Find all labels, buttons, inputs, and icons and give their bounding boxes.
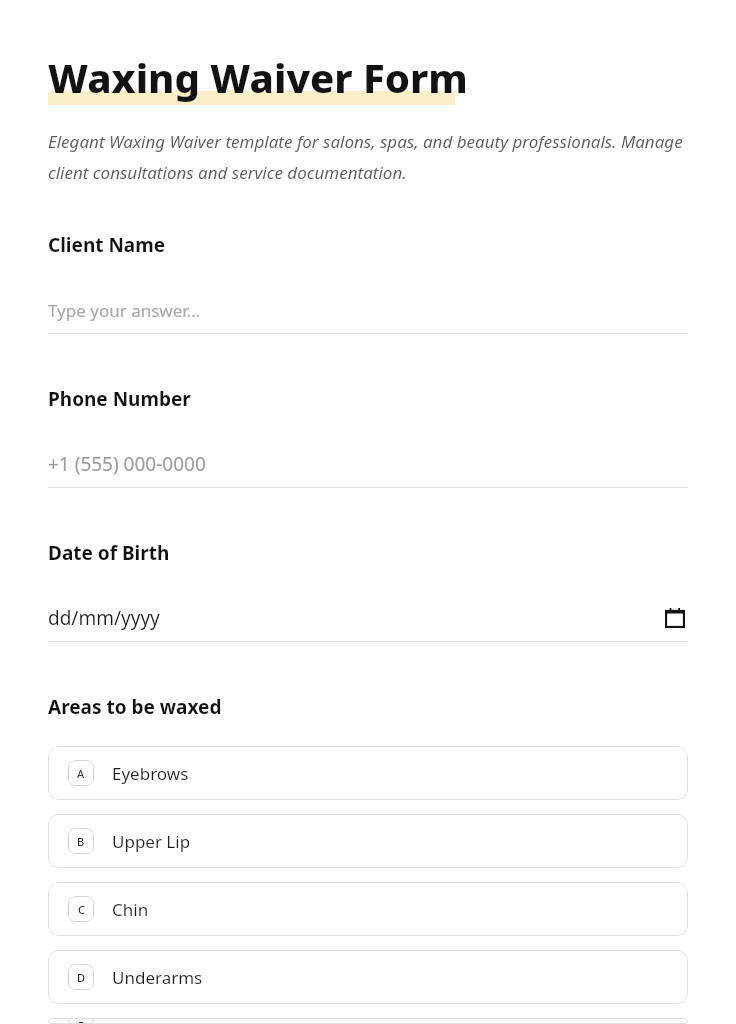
staticText: B <box>77 834 85 849</box>
staticText: D <box>77 970 86 985</box>
button[interactable]: E <box>48 1018 688 1024</box>
button[interactable]: +1 (555) 000-0000 <box>48 441 688 488</box>
staticText: Areas to be waxed <box>48 694 222 720</box>
staticText: Date of Birth <box>48 540 170 566</box>
staticText: Type your answer... <box>48 299 688 322</box>
button[interactable]: D <box>48 950 688 1004</box>
button[interactable]: A <box>48 746 688 800</box>
button[interactable]: Type your answer... <box>48 287 688 334</box>
staticText: Eyebrows <box>112 762 189 785</box>
staticText: Legs <box>112 1018 150 1024</box>
button[interactable]: B <box>48 814 688 868</box>
staticText: Waxing Waiver Form <box>48 50 468 104</box>
staticText: Phone Number <box>48 386 191 412</box>
staticText: Elegant Waxing Waiver template for salon… <box>48 130 688 184</box>
button[interactable]: C <box>48 882 688 936</box>
button[interactable]: Open date picker <box>662 605 688 631</box>
staticText: +1 (555) 000-0000 <box>48 451 688 477</box>
staticText: dd/mm/yyyy <box>48 605 662 631</box>
staticText: A <box>77 766 85 781</box>
button[interactable]: dd/mm/yyyy <box>48 595 688 642</box>
staticText: Upper Lip <box>112 830 191 853</box>
staticText: Client Name <box>48 232 166 258</box>
staticText: E <box>78 1018 85 1024</box>
staticText: C <box>78 902 85 917</box>
staticText: Chin <box>112 898 149 921</box>
staticText: Underarms <box>112 966 203 989</box>
